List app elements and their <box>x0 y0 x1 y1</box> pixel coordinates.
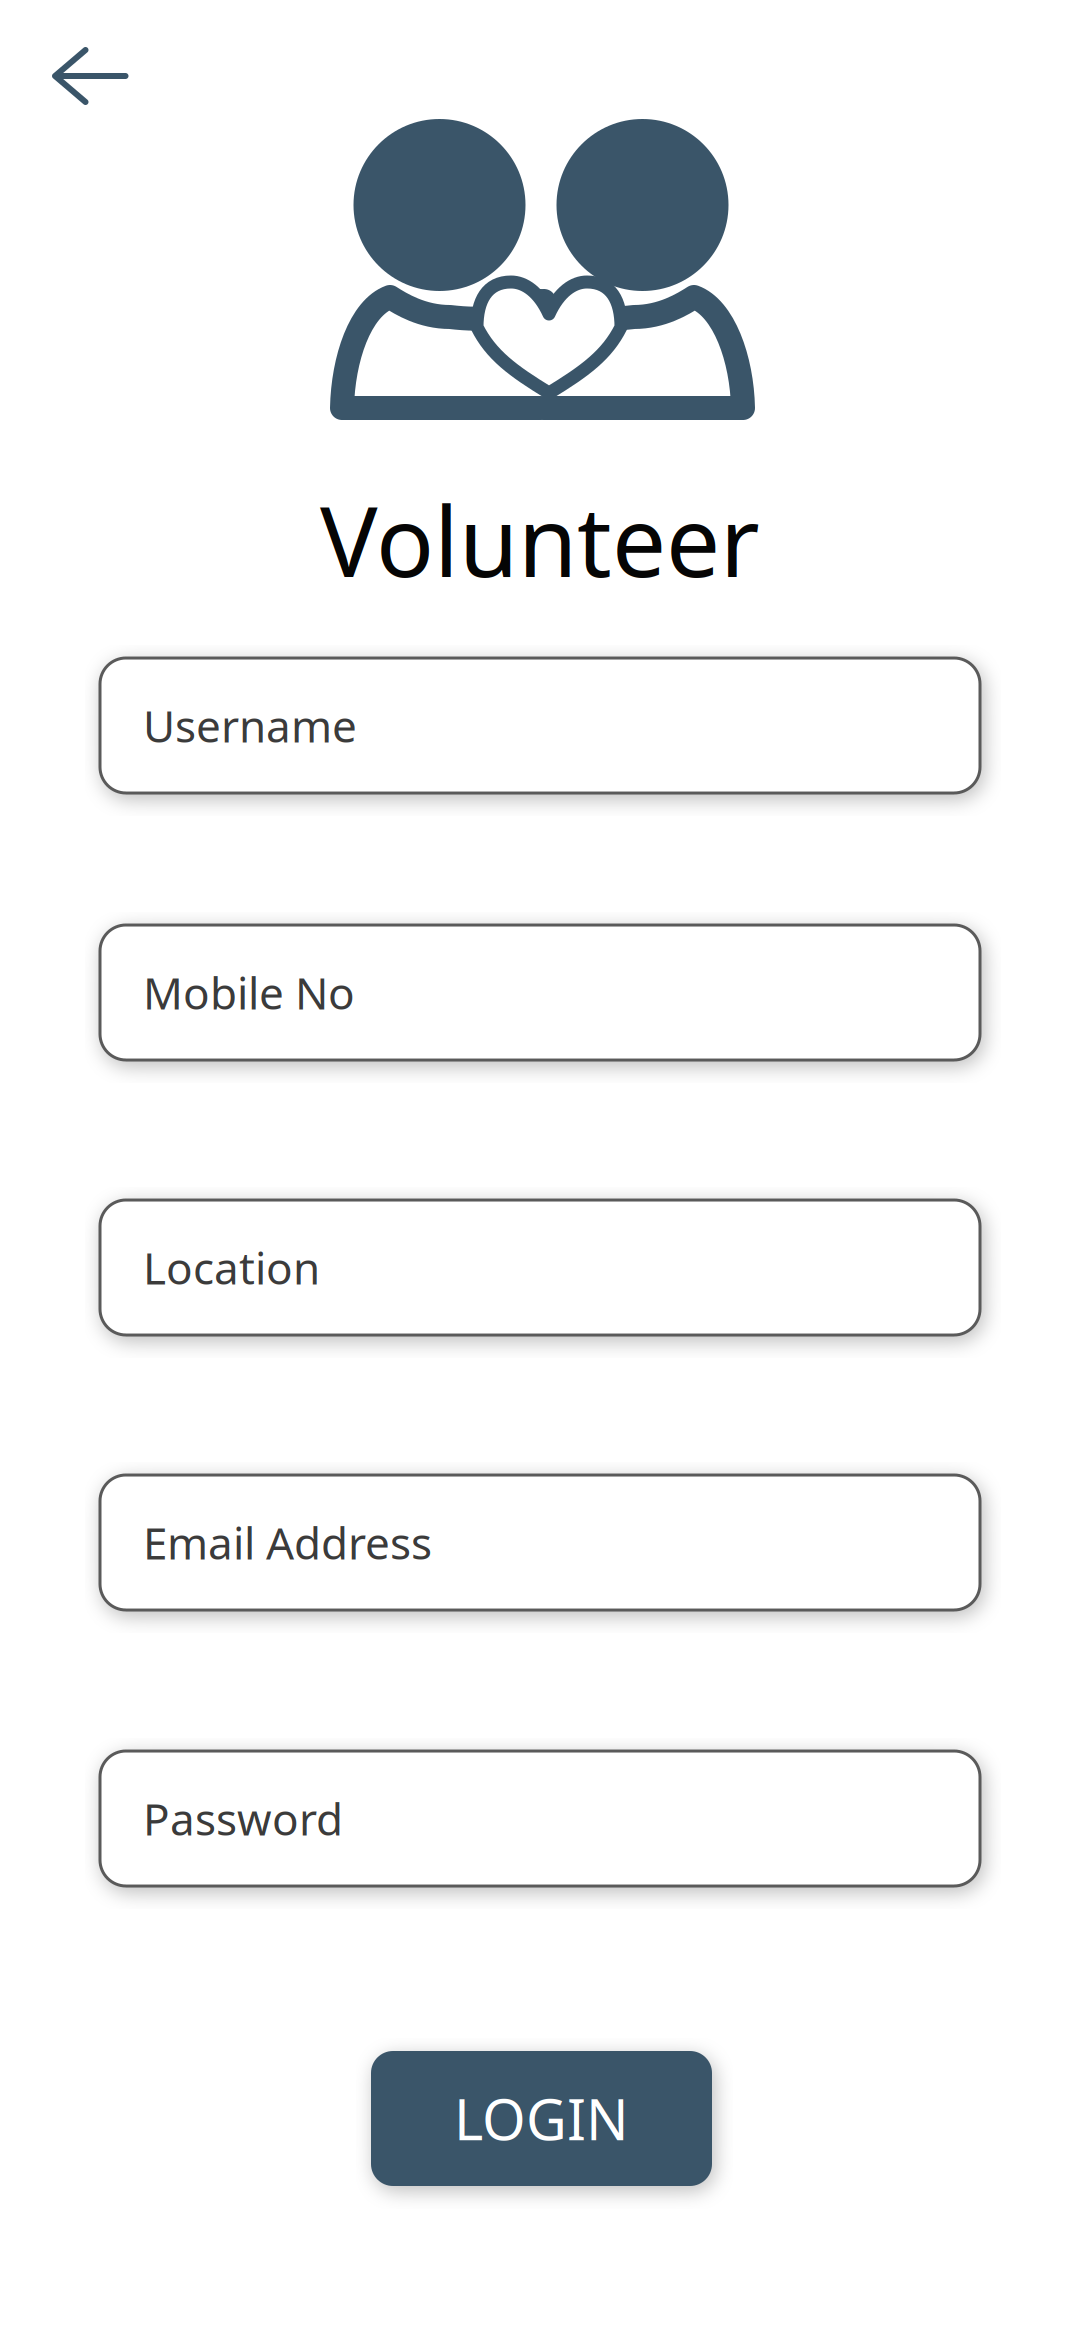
button[interactable]: Mobile No <box>100 925 980 1060</box>
staticText: Email Address <box>143 1513 432 1572</box>
staticText: Mobile No <box>143 963 355 1022</box>
staticText: LOGIN <box>454 2081 629 2156</box>
button[interactable]: Location <box>100 1200 980 1335</box>
staticText: Location <box>143 1238 320 1297</box>
staticText: Password <box>143 1789 343 1848</box>
button[interactable]: Back <box>23 22 157 130</box>
button[interactable]: Email Address <box>100 1475 980 1610</box>
button[interactable]: Username <box>100 658 980 793</box>
staticText: Username <box>143 696 357 755</box>
staticText: Volunteer <box>320 476 760 603</box>
button[interactable]: Password <box>100 1751 980 1886</box>
button[interactable]: LOGIN <box>371 2051 712 2186</box>
